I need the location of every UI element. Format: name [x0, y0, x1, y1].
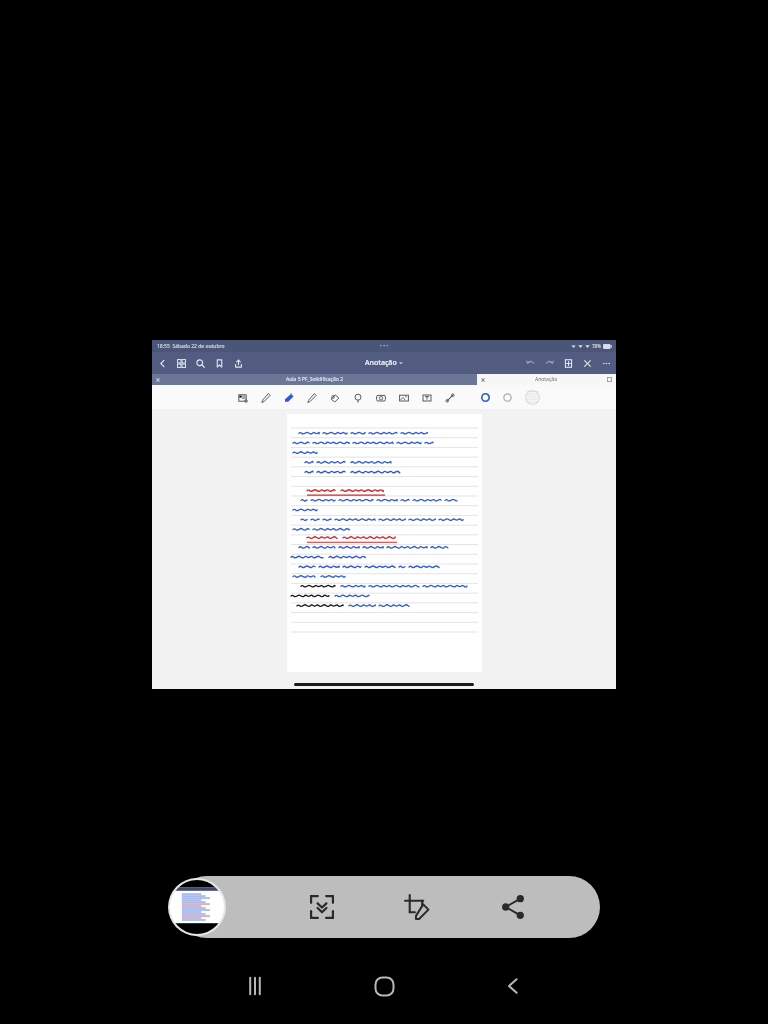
button[interactable]: Back [487, 960, 539, 1012]
button[interactable]: Blue color [479, 391, 491, 403]
button[interactable]: Add page [562, 357, 574, 369]
staticText: Aula 5 PF_Solidificação 2 [286, 376, 344, 383]
button[interactable]: Camera [374, 391, 387, 404]
button[interactable]: Crop and edit [395, 885, 439, 929]
button[interactable]: More options [600, 357, 612, 369]
button[interactable]: Pen [259, 391, 272, 404]
button[interactable]: Redo [543, 357, 555, 369]
button[interactable]: Highlighter selected [282, 391, 295, 404]
button[interactable]: Eraser [328, 391, 341, 404]
button[interactable]: Close [581, 357, 593, 369]
button[interactable]: Share [491, 885, 535, 929]
button[interactable]: Anotação [365, 358, 403, 368]
staticText: Anotação [365, 358, 397, 368]
staticText: 18:55 Sábado 22 de outubro [157, 343, 225, 350]
button[interactable]: Screenshot preview [170, 880, 224, 934]
button[interactable]: Recents [229, 960, 281, 1012]
button[interactable]: Home [358, 960, 410, 1012]
button[interactable]: Aula 5 PF_Solidificação 2 [152, 374, 477, 385]
staticText: Anotação [535, 376, 558, 383]
button[interactable]: Bookmark [213, 357, 225, 369]
button[interactable]: Thumbnails [175, 357, 187, 369]
button[interactable]: More colors [523, 388, 541, 406]
button[interactable]: Image [397, 391, 410, 404]
button[interactable]: Note settings [236, 391, 249, 404]
button[interactable]: Marker [305, 391, 318, 404]
button[interactable]: Gray color [501, 391, 513, 403]
button[interactable]: Lasso [351, 391, 364, 404]
button[interactable]: Export [232, 357, 244, 369]
button[interactable]: Search [194, 357, 206, 369]
button[interactable]: Anotação [477, 374, 616, 385]
button[interactable]: Text [420, 391, 433, 404]
button[interactable]: Scroll capture [300, 885, 344, 929]
button[interactable]: Back [156, 357, 168, 369]
button[interactable]: Link [443, 391, 456, 404]
staticText: • • • [380, 343, 389, 350]
button[interactable]: Undo [524, 357, 536, 369]
staticText: 78% [592, 343, 601, 349]
